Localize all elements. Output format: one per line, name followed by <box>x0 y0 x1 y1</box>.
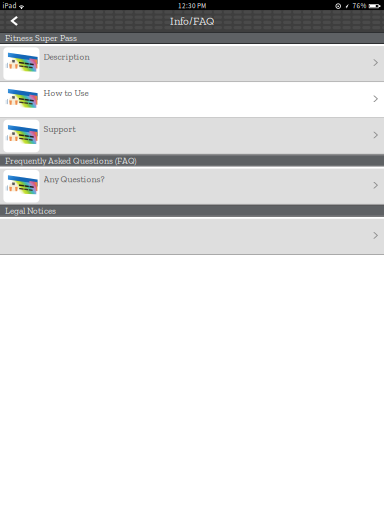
staticText: Description <box>44 51 90 62</box>
button[interactable]: Back <box>0 16 18 26</box>
staticText: iPad <box>3 1 17 11</box>
staticText: Info/FAQ <box>170 14 214 28</box>
button[interactable] <box>0 219 384 255</box>
button[interactable]: Support <box>0 118 384 155</box>
staticText: Any Questions? <box>44 174 105 185</box>
staticText: 12:30 PM <box>178 1 206 11</box>
staticText: Support <box>44 124 76 134</box>
button[interactable]: Any Questions? <box>0 169 384 205</box>
staticText: Fitness Super Pass <box>5 33 77 43</box>
staticText: 76% <box>353 1 367 11</box>
staticText: How to Use <box>44 87 89 98</box>
button[interactable]: Description <box>0 46 384 82</box>
button[interactable]: How to Use <box>0 82 384 118</box>
staticText: Frequently Asked Questions (FAQ) <box>5 155 136 166</box>
staticText: Legal Notices <box>5 205 56 216</box>
